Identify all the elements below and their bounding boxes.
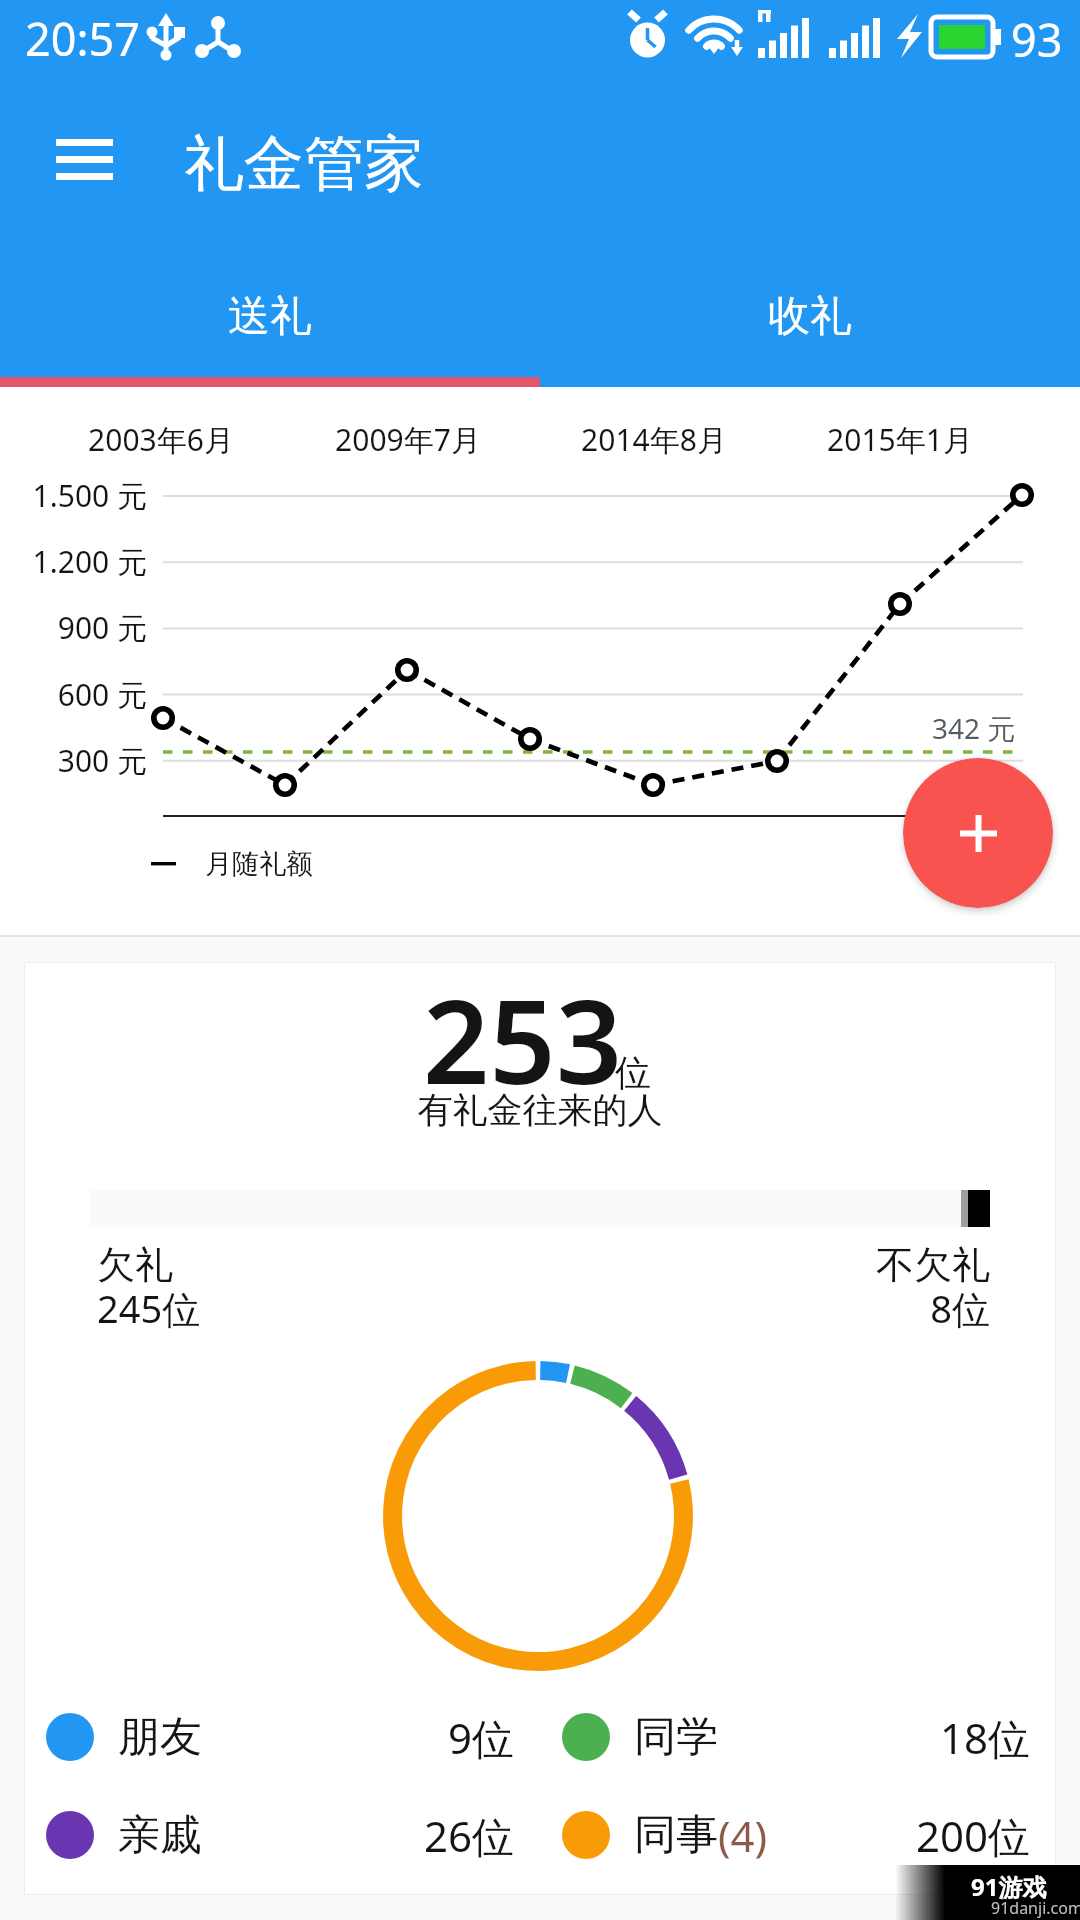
staticText: 200位 [916,1807,1031,1864]
staticText: 26位 [424,1807,515,1864]
staticText: 1.200 元 [0,541,147,582]
staticText: 送礼 [228,290,312,343]
staticText: 亲戚 [118,1809,202,1862]
button[interactable]: Add [903,758,1053,908]
staticText: 2003年6月 [31,419,291,460]
button[interactable]: 收礼 [540,240,1080,387]
staticText: 8位 [24,1282,990,1334]
staticText: 位 [615,1050,651,1095]
button[interactable]: 同学 [540,1696,1056,1778]
staticText: 342 元 [932,709,1016,747]
staticText: 同学 [634,1711,718,1764]
staticText: 253 [423,960,623,1118]
button[interactable]: Menu [24,99,144,219]
staticText: 同事 [634,1809,718,1862]
staticText: 20:57 [25,8,141,69]
staticText: 有礼金往来的人 [24,1088,1056,1132]
staticText: 收礼 [768,290,852,343]
button[interactable]: 送礼 [0,240,540,387]
other: Alarm, wifi, signal, charging [626,8,1026,66]
staticText: 朋友 [118,1711,202,1764]
staticText: 1.500 元 [0,475,147,516]
staticText: 18位 [940,1709,1031,1766]
staticText: 93 [1011,9,1063,70]
staticText: 900 元 [0,607,147,648]
button[interactable]: 朋友 [24,1696,540,1778]
staticText: 2014年8月 [524,419,784,460]
staticText: 9位 [448,1709,515,1766]
staticText: 300 元 [0,740,147,781]
staticText: 600 元 [0,674,147,715]
other: USB connected [146,12,246,62]
button[interactable]: 亲戚 [24,1794,540,1876]
staticText: 91游戏 [971,1870,1047,1903]
staticText: 不欠礼 [24,1241,990,1289]
staticText: 欠礼 [97,1241,173,1289]
staticText: 月随礼额 [205,847,313,881]
staticText: 2009年7月 [278,419,538,460]
button[interactable]: 同事 [540,1794,1056,1876]
staticText: 2015年1月 [770,419,1030,460]
staticText: 91danji.com [991,1897,1080,1919]
staticText: 礼金管家 [184,126,424,202]
staticText: (4) [718,1807,768,1864]
staticText: 245位 [97,1282,201,1334]
